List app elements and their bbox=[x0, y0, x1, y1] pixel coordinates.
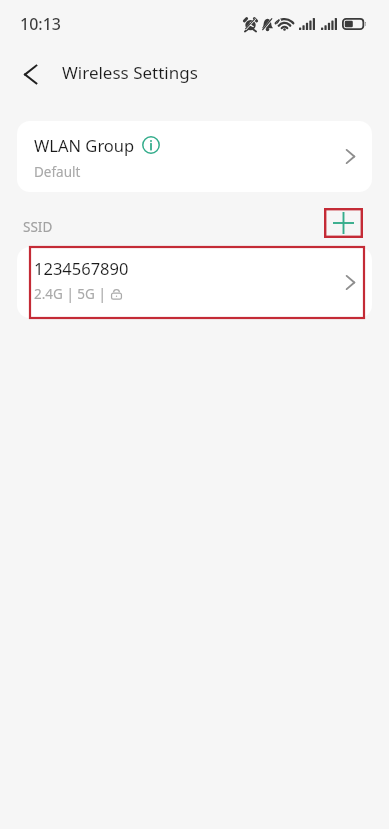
staticText: SSID bbox=[23, 218, 53, 236]
button[interactable]: 1234567890 bbox=[17, 247, 372, 318]
button[interactable]: Back bbox=[8, 52, 52, 96]
staticText: 10:13 bbox=[20, 13, 61, 35]
staticText: Wireless Settings bbox=[62, 61, 198, 84]
staticText: 1234567890 bbox=[34, 257, 129, 279]
staticText: WLAN Group bbox=[34, 134, 135, 156]
staticText: Default bbox=[34, 163, 81, 181]
button[interactable]: Add SSID bbox=[324, 208, 363, 238]
staticText: 2.4G | 5G | bbox=[34, 285, 110, 303]
button[interactable]: WLAN Group bbox=[17, 121, 372, 192]
